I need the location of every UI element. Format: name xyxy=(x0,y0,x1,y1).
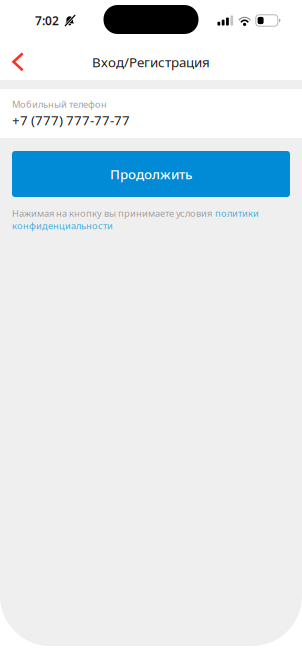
staticText: конфиденциальности xyxy=(12,219,113,232)
staticText: Вход/Регистрация xyxy=(92,53,210,71)
staticText: политики xyxy=(215,207,259,219)
staticText: Мобильный телефон xyxy=(12,98,107,110)
button[interactable]: Back xyxy=(0,45,42,79)
button[interactable]: Продолжить xyxy=(12,151,290,197)
button[interactable]: Мобильный телефон xyxy=(0,89,302,138)
staticText: 7:02 xyxy=(35,12,59,28)
staticText: +7 (777) 777-77-77 xyxy=(12,111,130,129)
button[interactable]: конфиденциальности xyxy=(12,219,113,232)
button[interactable]: политики xyxy=(215,207,259,219)
staticText: Нажимая на кнопку вы принимаете условия xyxy=(12,207,212,219)
staticText: Продолжить xyxy=(110,165,192,183)
